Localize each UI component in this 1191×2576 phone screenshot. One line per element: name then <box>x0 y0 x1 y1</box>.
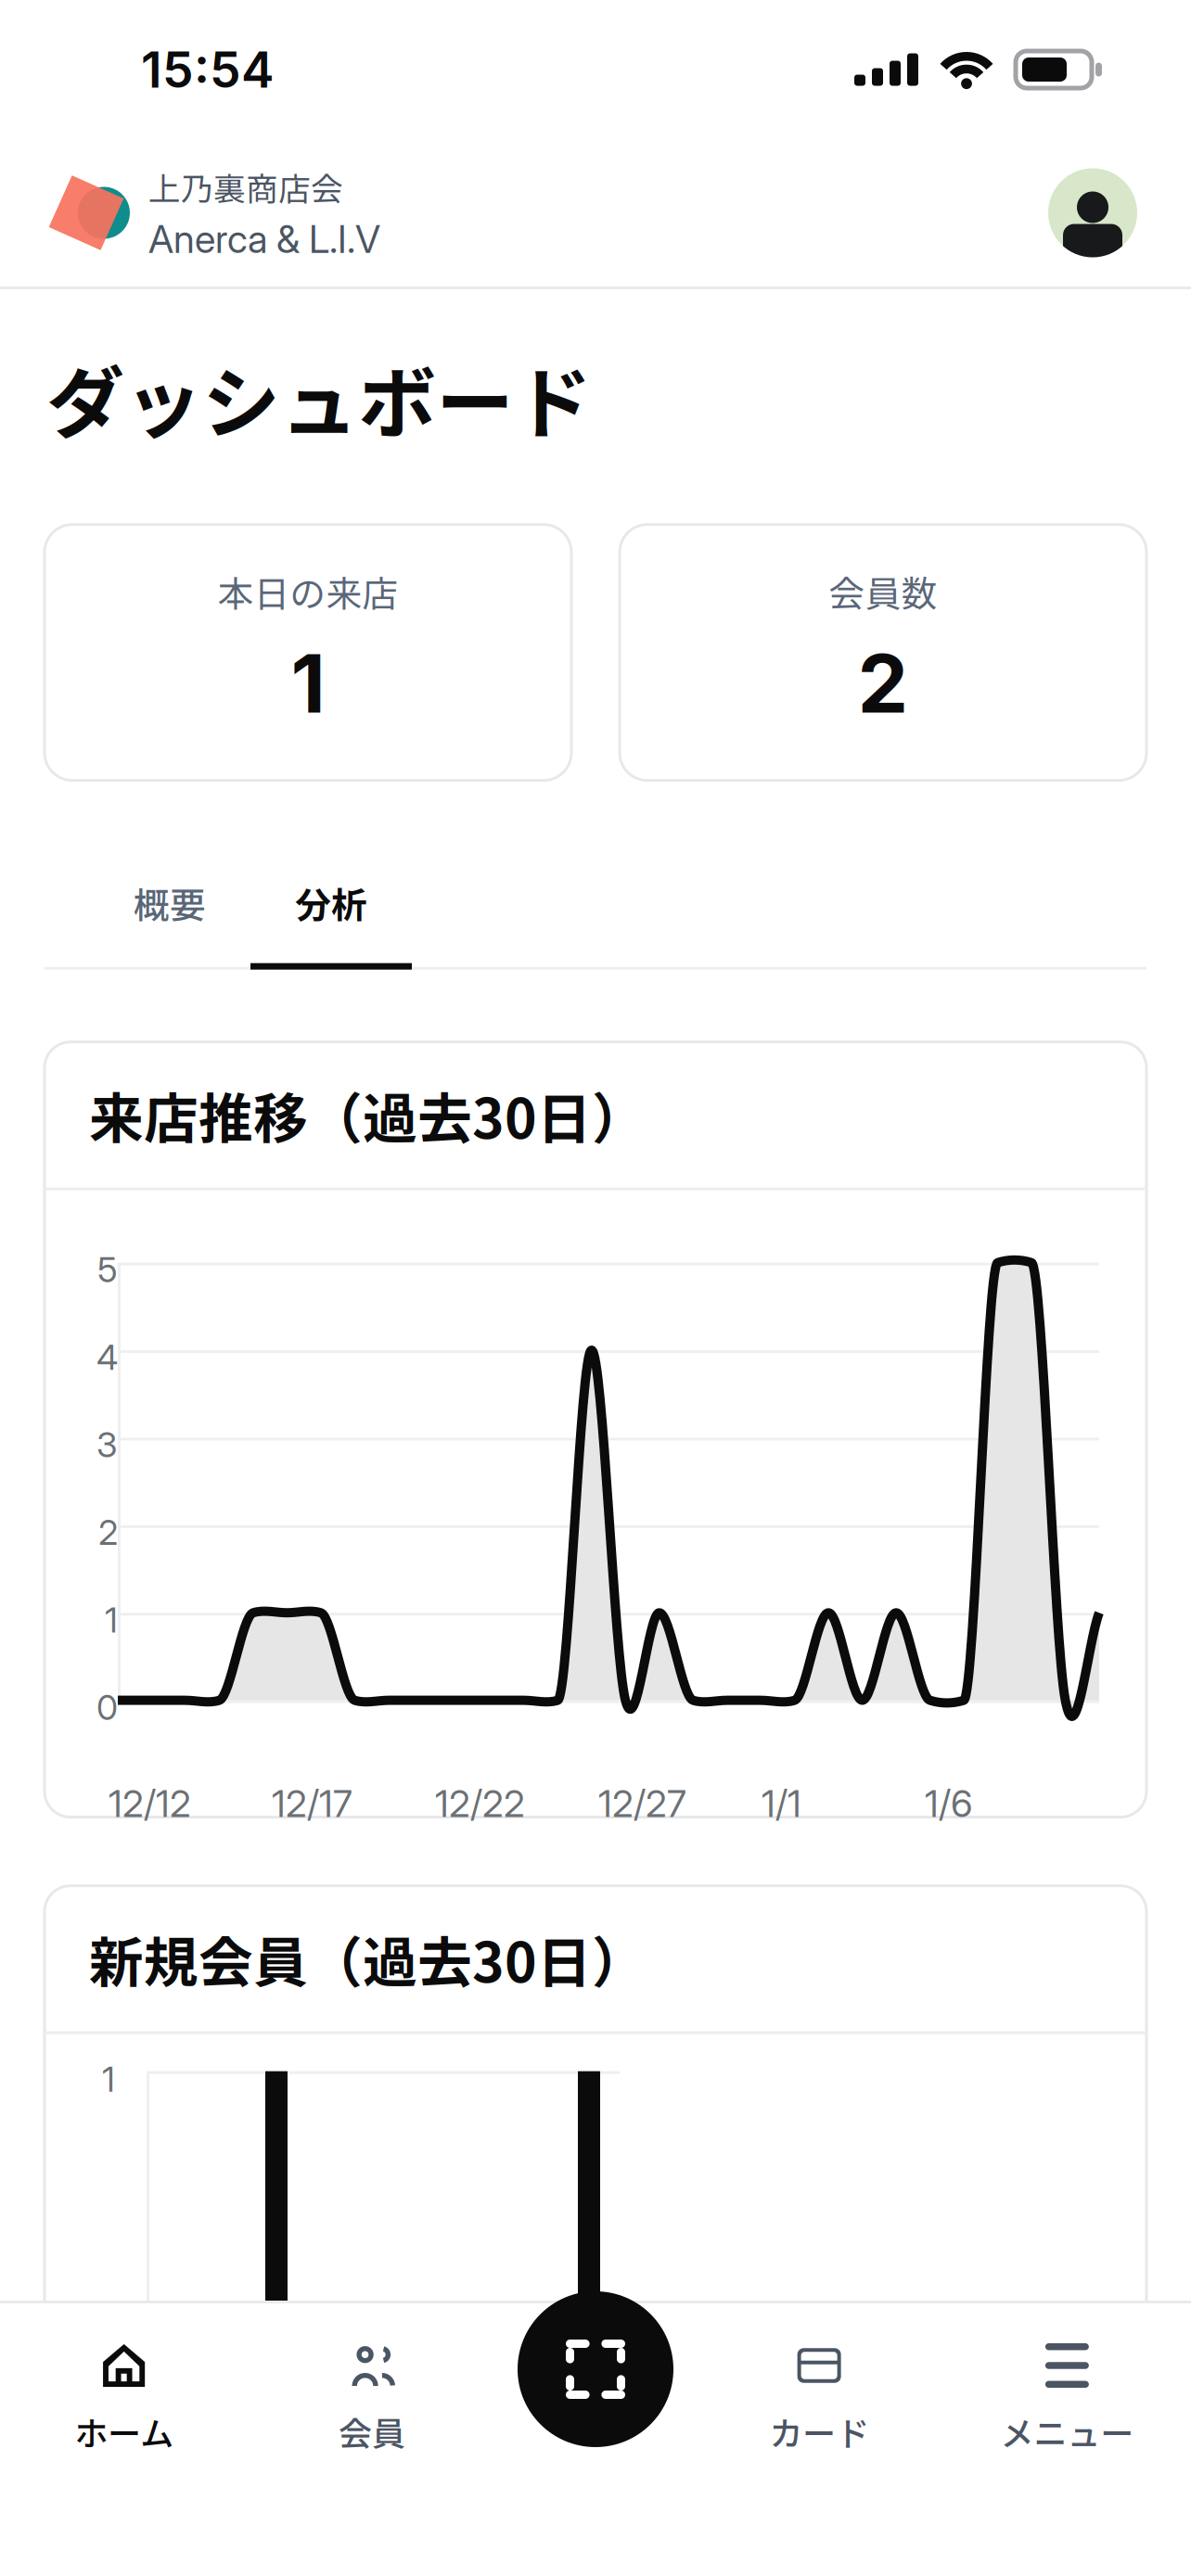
staticText: 4 <box>96 1336 118 1378</box>
staticText: 0 <box>96 1686 118 1728</box>
staticText: 1 <box>291 635 325 732</box>
staticText: 3 <box>96 1424 118 1466</box>
staticText: 1 <box>102 2058 115 2100</box>
staticText: 5 <box>97 1249 118 1291</box>
button[interactable]: カード <box>695 2343 943 2492</box>
button[interactable]: 本日の来店 <box>45 524 571 780</box>
staticText: 2 <box>858 635 909 732</box>
staticText: 12/22 <box>435 1781 525 1826</box>
staticText: 本日の来店 <box>218 565 398 617</box>
staticText: 1 <box>105 1599 118 1641</box>
staticText: 12/27 <box>598 1781 686 1826</box>
button[interactable]: Account <box>1048 168 1137 257</box>
button[interactable]: 概要 <box>89 856 250 970</box>
staticText: 分析 <box>295 877 367 929</box>
staticText: 新規会員（過去30日） <box>89 1919 647 1998</box>
staticText: カード <box>769 2407 869 2455</box>
button[interactable]: 分析 <box>250 856 412 970</box>
button[interactable]: メニュー <box>943 2343 1191 2492</box>
button[interactable]: 会員 <box>248 2343 496 2492</box>
staticText: 12/17 <box>272 1781 352 1826</box>
staticText: 会員 <box>338 2407 405 2455</box>
staticText: 上乃裏商店会 <box>148 164 343 210</box>
staticText: ダッシュボード <box>46 341 592 454</box>
button[interactable]: Scan <box>518 2291 673 2447</box>
staticText: 概要 <box>134 877 206 929</box>
button[interactable]: 会員数 <box>620 524 1146 780</box>
staticText: 2 <box>98 1511 118 1553</box>
staticText: Anerca & L.I.V <box>148 216 380 262</box>
staticText: 1/1 <box>762 1781 801 1826</box>
staticText: 1/6 <box>925 1781 973 1826</box>
staticText: 15:54 <box>141 40 275 99</box>
staticText: 来店推移（過去30日） <box>89 1075 647 1154</box>
staticText: 12/12 <box>109 1781 191 1826</box>
button[interactable]: ホーム <box>0 2343 248 2492</box>
staticText: メニュー <box>1000 2407 1134 2455</box>
staticText: 会員数 <box>829 565 937 617</box>
staticText: ホーム <box>74 2407 174 2455</box>
